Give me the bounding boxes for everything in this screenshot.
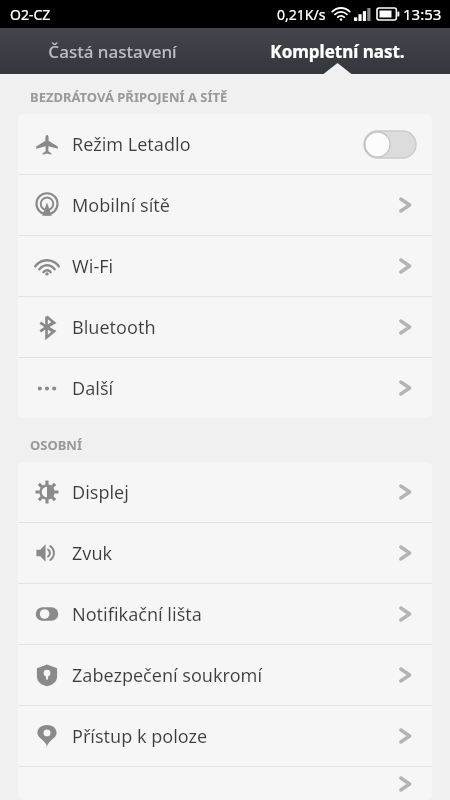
button[interactable]: Režim Letadlo (18, 114, 432, 174)
staticText: Častá nastavení (48, 40, 177, 63)
button[interactable]: Přístup k poloze (18, 706, 432, 766)
staticText: 13:53 (403, 4, 442, 24)
button[interactable]: Displej (18, 462, 432, 522)
staticText: 0,21K/s (277, 5, 326, 24)
button[interactable]: Další (18, 358, 432, 418)
staticText: Notifikační lišta (72, 602, 396, 627)
staticText: Bluetooth (72, 315, 396, 340)
button[interactable]: Zvuk (18, 523, 432, 583)
button[interactable]: Častá nastavení (0, 28, 225, 74)
staticText: OSOBNÍ (30, 436, 83, 454)
button[interactable]: Kompletní nast. (225, 28, 450, 74)
staticText: Kompletní nast. (270, 40, 405, 63)
staticText: Mobilní sítě (72, 193, 396, 218)
staticText: Další (72, 376, 396, 401)
staticText: BEZDRÁTOVÁ PŘIPOJENÍ A SÍTĚ (30, 88, 228, 106)
button[interactable] (18, 767, 432, 800)
button[interactable]: Zabezpečení soukromí (18, 645, 432, 705)
staticText: Zabezpečení soukromí (72, 663, 396, 688)
button[interactable]: Notifikační lišta (18, 584, 432, 644)
staticText: Displej (72, 480, 396, 505)
staticText: Režim Letadlo (72, 132, 364, 157)
staticText: Zvuk (72, 541, 396, 566)
staticText: Přístup k poloze (72, 724, 396, 749)
button[interactable]: Bluetooth (18, 297, 432, 357)
staticText: Wi-Fi (72, 254, 396, 279)
button[interactable]: Wi-Fi (18, 236, 432, 296)
button[interactable]: Mobilní sítě (18, 175, 432, 235)
staticText: O2-CZ (10, 5, 51, 24)
